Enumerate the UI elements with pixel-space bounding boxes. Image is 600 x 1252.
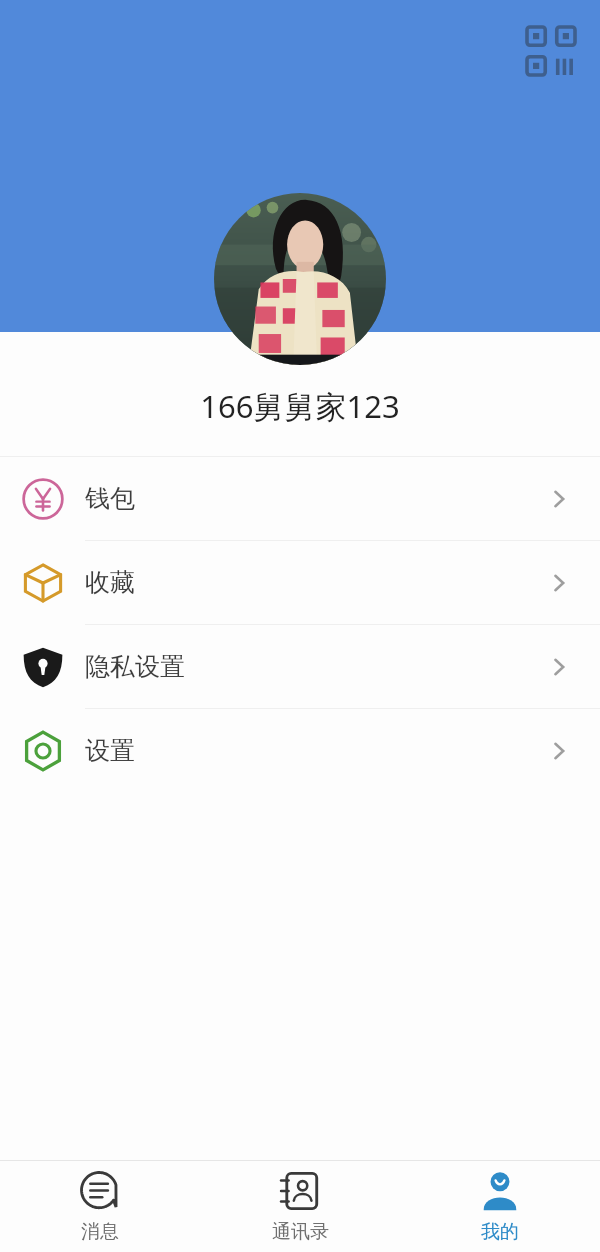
button[interactable]: 我的 [400, 1161, 600, 1252]
staticText: 消息 [81, 1220, 119, 1244]
staticText: 设置 [85, 735, 135, 766]
button[interactable]: 钱包 [0, 457, 600, 540]
staticText: 166舅舅家123 [200, 385, 400, 427]
staticText: 收藏 [85, 567, 135, 598]
staticText: 我的 [481, 1220, 519, 1244]
staticText: 钱包 [85, 483, 135, 514]
button[interactable]: 收藏 [0, 541, 600, 624]
button[interactable]: 隐私设置 [0, 625, 600, 708]
button[interactable]: 消息 [0, 1161, 200, 1252]
staticText: 通讯录 [272, 1220, 329, 1244]
button[interactable]: 设置 [0, 709, 600, 792]
button[interactable]: Scan QR code [516, 16, 586, 86]
button[interactable]: Profile photo [214, 193, 386, 365]
button[interactable]: 通讯录 [200, 1161, 400, 1252]
staticText: 隐私设置 [85, 651, 185, 682]
